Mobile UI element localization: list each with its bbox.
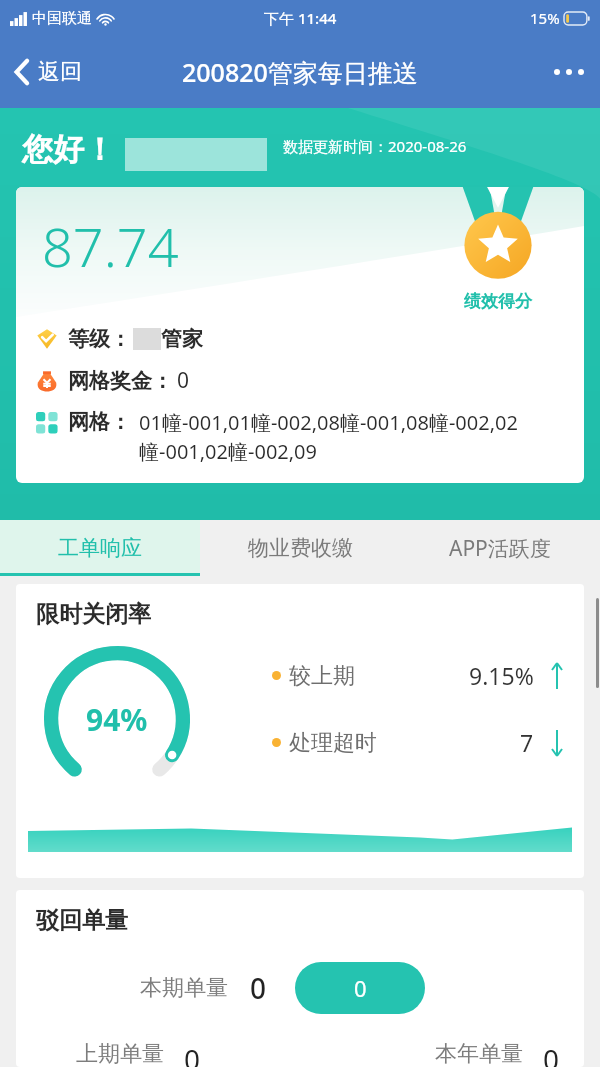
staticText: 物业费收缴 <box>248 535 353 561</box>
staticText: 上期单量 <box>76 1040 164 1067</box>
staticText: 本年单量 <box>435 1040 523 1067</box>
staticText: 管家 <box>161 326 203 352</box>
staticText: 94% <box>86 699 148 740</box>
button[interactable]: 工单响应 <box>0 520 200 576</box>
staticText: 0 <box>184 1040 201 1067</box>
staticText: 网格奖金： <box>68 368 173 394</box>
button[interactable]: 限时关闭率 <box>16 584 584 878</box>
staticText: 0 <box>543 1040 560 1067</box>
staticText: 01幢-001,01幢-002,08幢-001,08幢-002,02幢-001,… <box>139 409 570 465</box>
staticText: 较上期 <box>289 662 355 690</box>
button[interactable]: 物业费收缴 <box>200 520 400 576</box>
staticText: APP活跃度 <box>449 534 551 563</box>
staticText: 绩效得分 <box>464 291 532 312</box>
staticText: 工单响应 <box>58 535 142 561</box>
staticText: 数据更新时间：2020-08-26 <box>283 136 467 156</box>
button[interactable]: 返回 <box>0 36 96 108</box>
staticText: 驳回单量 <box>36 906 128 935</box>
staticText: 返回 <box>38 58 82 86</box>
staticText: 200820管家每日推送 <box>182 55 418 89</box>
staticText: 本期单量 <box>140 974 228 1002</box>
staticText: 15% <box>530 8 560 28</box>
staticText: 网格： <box>68 409 131 435</box>
staticText: 7 <box>520 727 534 758</box>
staticText: 限时关闭率 <box>36 600 151 629</box>
staticText: 下午 11:44 <box>264 8 337 28</box>
staticText: 0 <box>354 973 367 1003</box>
staticText: 9.15% <box>469 660 534 691</box>
staticText: 等级： <box>68 326 131 352</box>
staticText: 0 <box>250 969 267 1007</box>
staticText: 0 <box>177 366 190 395</box>
staticText: 中国联通 <box>32 9 92 28</box>
button[interactable]: More options <box>538 36 600 108</box>
button[interactable]: 87.74 <box>16 187 584 483</box>
staticText: 87.74 <box>42 209 179 283</box>
button[interactable]: 0 <box>295 962 425 1014</box>
staticText: 您好！ <box>22 130 115 169</box>
staticText: 处理超时 <box>289 729 377 757</box>
button[interactable]: APP活跃度 <box>400 520 600 576</box>
button[interactable]: 驳回单量 <box>16 890 584 1067</box>
